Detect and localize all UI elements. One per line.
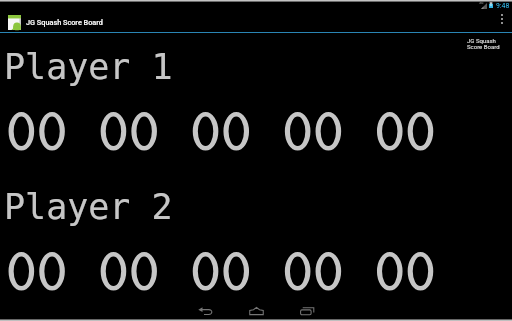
button[interactable]: Recent apps	[288, 300, 326, 321]
staticText: JG Squash Score Board	[26, 18, 103, 27]
staticText: 9:48	[496, 2, 510, 10]
staticText: Player 1	[4, 47, 173, 88]
staticText: JG Squash Score Board	[467, 37, 500, 51]
staticText: Player 2	[4, 187, 173, 228]
button[interactable]: Home	[237, 300, 275, 321]
staticText: 3G	[479, 1, 484, 5]
button[interactable]: More options	[490, 8, 512, 32]
button[interactable]: Back	[186, 300, 224, 321]
